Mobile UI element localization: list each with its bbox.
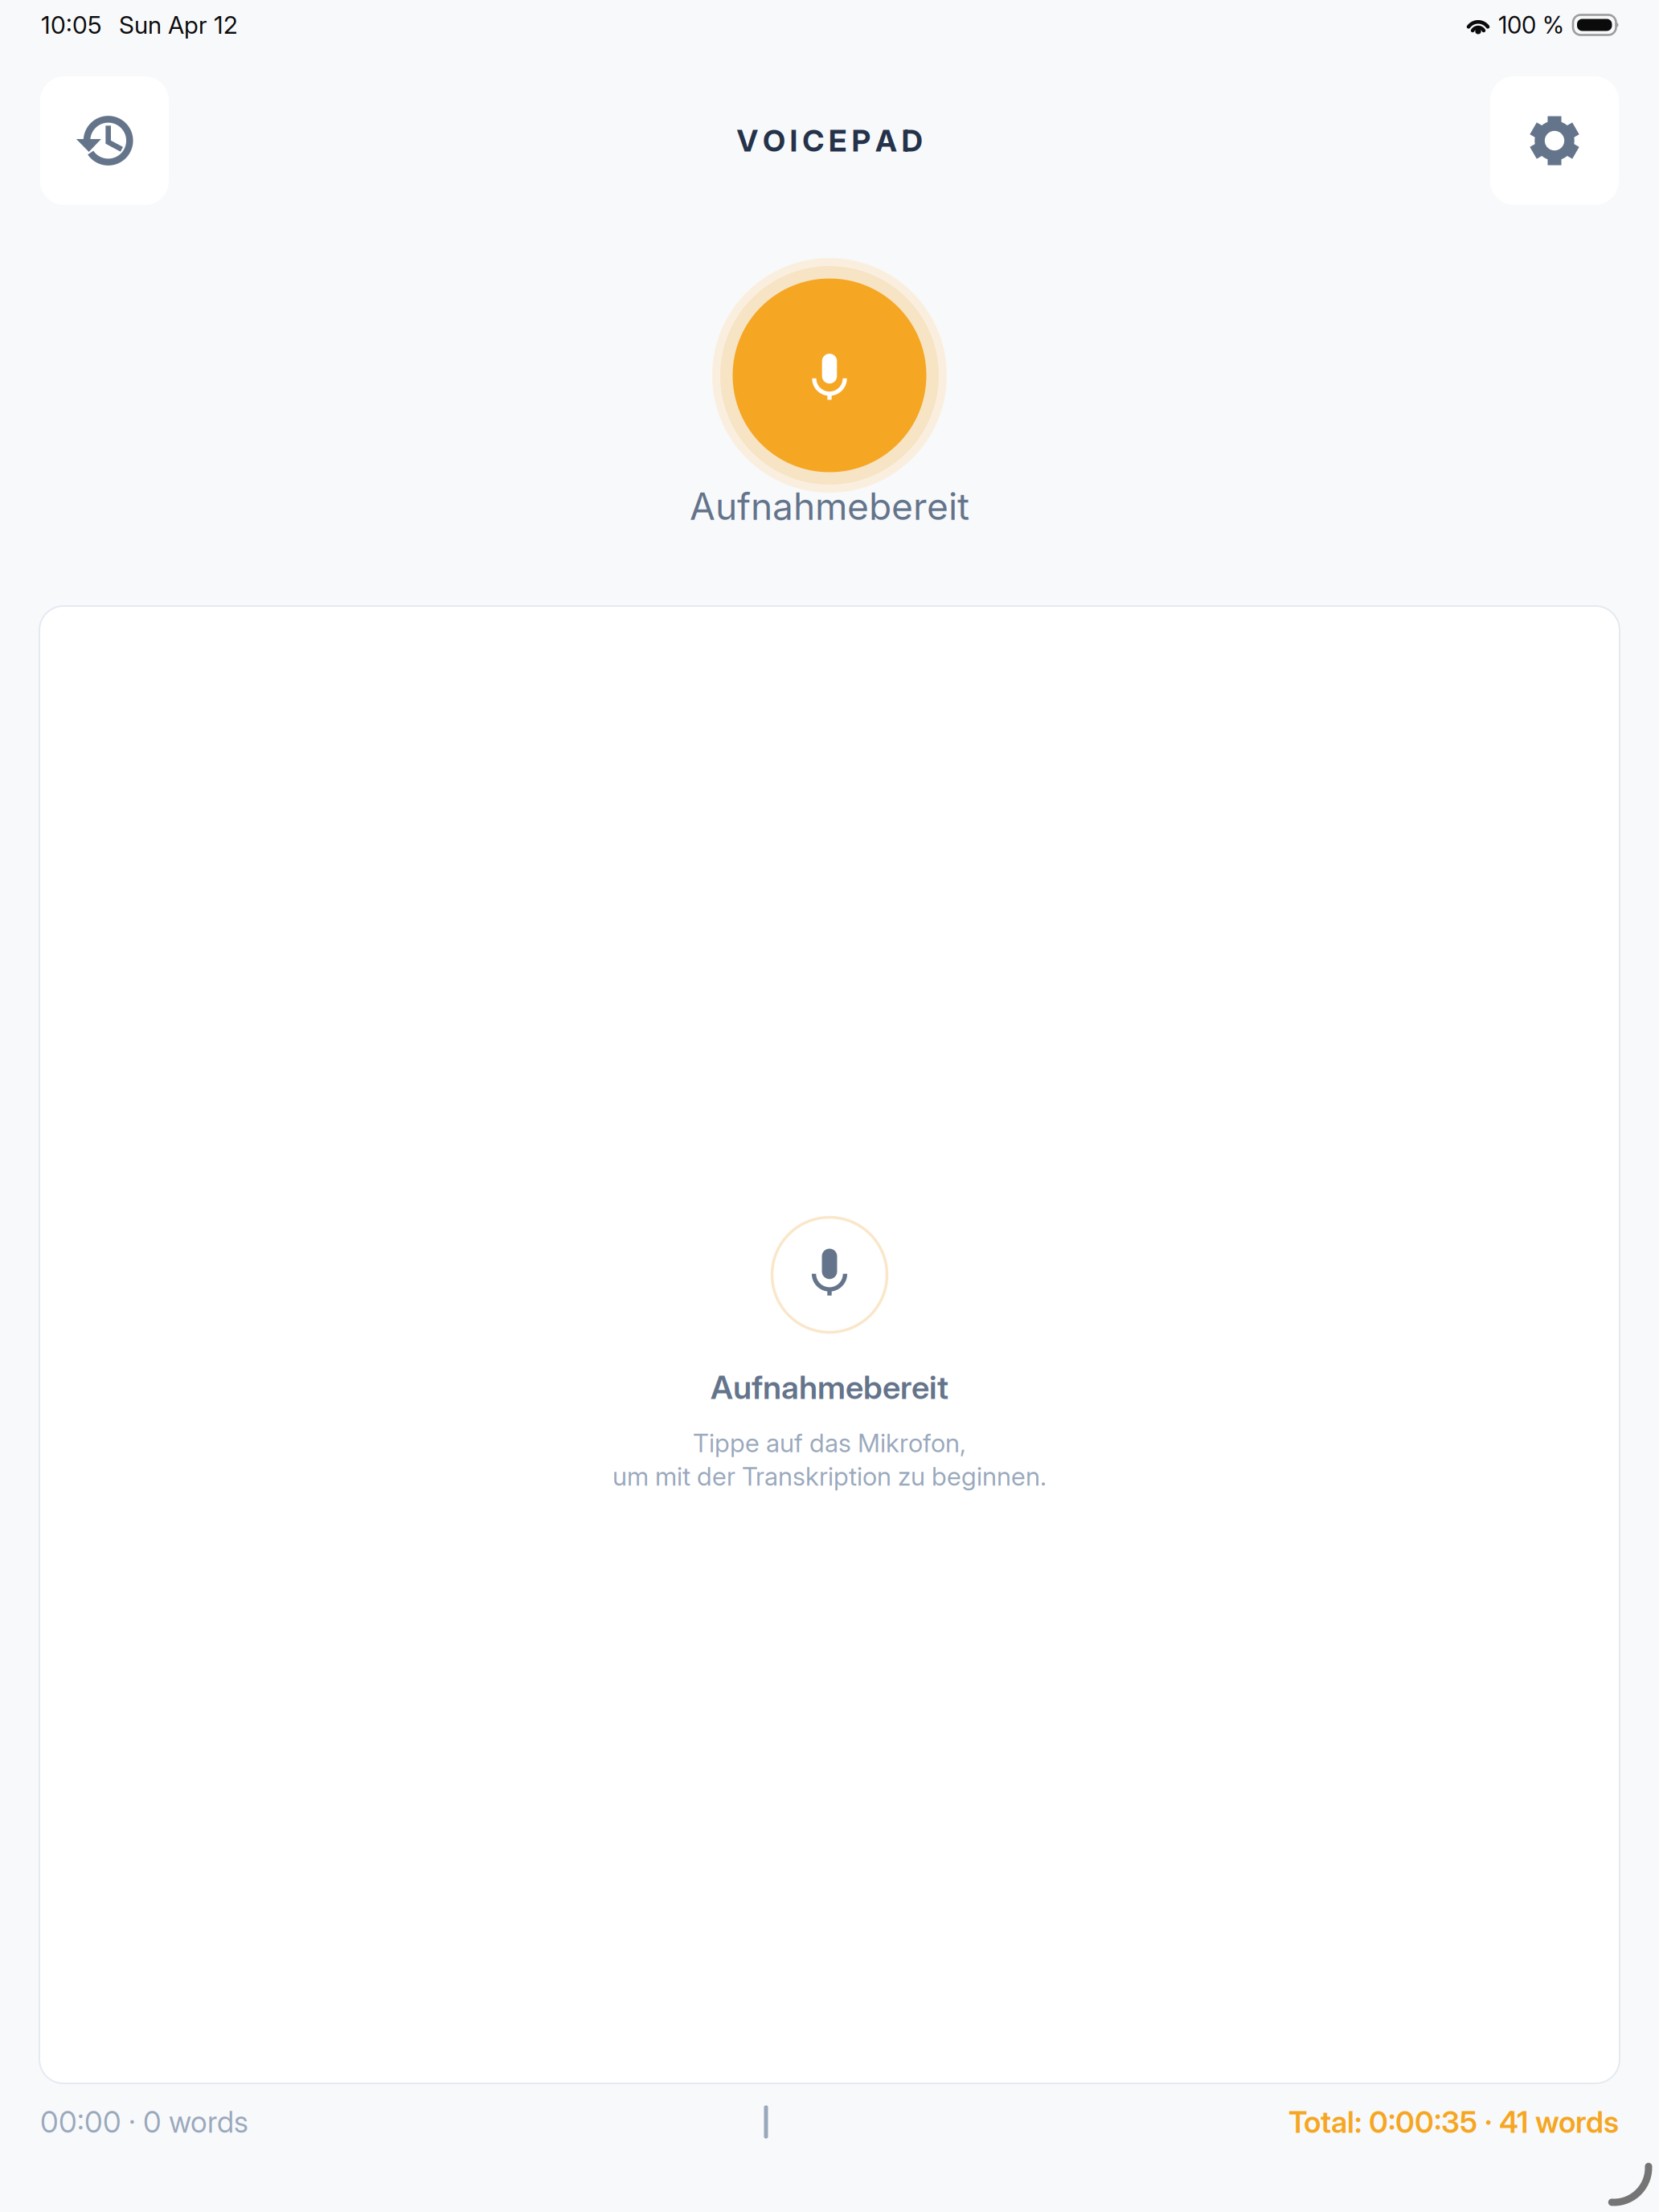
- staticText: Aufnahmebereit: [711, 1368, 948, 1407]
- staticText: A: [875, 122, 897, 159]
- staticText: D: [902, 122, 922, 159]
- staticText: C: [802, 122, 824, 159]
- staticText: V: [737, 122, 758, 159]
- staticText: Sun Apr 12: [119, 10, 238, 40]
- staticText: Tippe auf das Mikrofon,: [693, 1428, 966, 1458]
- button[interactable]: Settings: [1490, 76, 1619, 205]
- staticText: P: [852, 122, 871, 159]
- staticText: O: [763, 122, 785, 159]
- staticText: E: [829, 122, 847, 159]
- staticText: I: [790, 122, 798, 159]
- staticText: 00:00 · 0 words: [40, 2104, 248, 2140]
- staticText: Aufnahmebereit: [690, 484, 969, 529]
- staticText: 10:05: [41, 10, 102, 40]
- staticText: 100 %: [1498, 11, 1564, 39]
- button[interactable]: History: [40, 76, 169, 205]
- staticText: Total: 0:00:35 · 41 words: [1288, 2104, 1619, 2140]
- staticText: um mit der Transkription zu beginnen.: [612, 1461, 1047, 1492]
- button[interactable]: Record: [712, 258, 947, 493]
